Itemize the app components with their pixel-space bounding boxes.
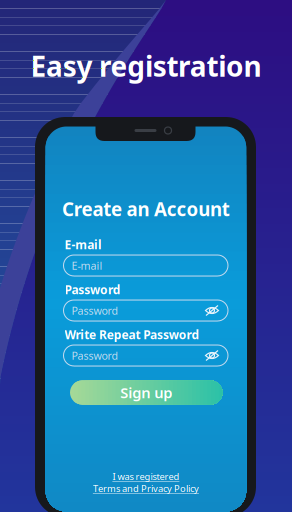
staticText: E-mail [71, 258, 102, 273]
staticText: I was registered [112, 470, 179, 483]
staticText: Easy registration [30, 47, 262, 85]
staticText: Password [64, 281, 121, 297]
staticText: E-mail [64, 236, 102, 252]
staticText: Sign up [120, 383, 172, 402]
button[interactable]: I was registered [46, 471, 246, 482]
staticText: Write Repeat Password [64, 326, 199, 342]
button[interactable]: Sign up [70, 380, 222, 404]
staticText: Password [71, 303, 118, 318]
staticText: Password [71, 348, 118, 363]
staticText: Terms and Privacy Policy [93, 482, 199, 495]
staticText: Create an Account [62, 197, 230, 221]
button[interactable]: Terms and Privacy Policy [46, 483, 246, 494]
